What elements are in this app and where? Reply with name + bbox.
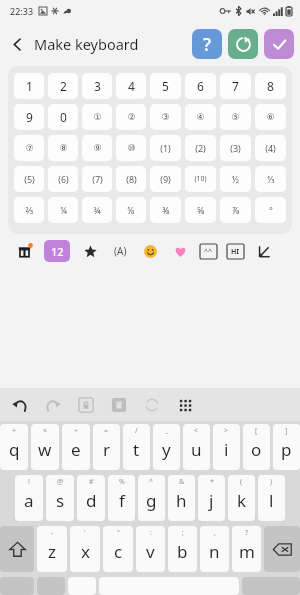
button[interactable]: Lock (76, 395, 96, 415)
button[interactable]: ⅝ (185, 197, 216, 223)
button[interactable]: / (123, 424, 150, 470)
button[interactable]: + (0, 424, 28, 470)
staticText: ⑦ (25, 143, 34, 153)
button[interactable]: 4 (116, 73, 146, 99)
staticText: " (117, 528, 120, 538)
button[interactable]: Hearts (170, 241, 190, 261)
button[interactable]: 6 (185, 73, 216, 99)
button[interactable]: ⅓ (255, 166, 286, 192)
staticText: Make keyboard (34, 34, 139, 54)
button[interactable]: Favorites (80, 241, 100, 261)
button[interactable]: , (200, 526, 229, 572)
button[interactable]: ; (168, 526, 197, 572)
staticText: ( (240, 477, 243, 487)
button[interactable]: Help (192, 29, 222, 59)
button[interactable]: Text (227, 244, 244, 259)
button[interactable]: ÷ (62, 424, 90, 470)
button[interactable]: ⑦ (14, 135, 44, 161)
button[interactable]: Done (264, 29, 294, 59)
button[interactable]: ! (15, 475, 43, 521)
button[interactable]: > (213, 424, 240, 470)
button[interactable]: & (168, 475, 195, 521)
button[interactable]: ⑥ (255, 104, 286, 130)
button[interactable]: ⑩ (116, 135, 146, 161)
button[interactable]: 12 (44, 240, 70, 262)
button[interactable]: ¼ (48, 197, 78, 223)
button[interactable]: ¾ (82, 197, 112, 223)
button[interactable]: (8) (116, 166, 146, 192)
button[interactable]: ' (70, 526, 100, 572)
button[interactable]: ( (228, 475, 255, 521)
button[interactable]: ] (273, 424, 300, 470)
button[interactable]: Sync (142, 395, 162, 415)
button[interactable]: ° (255, 197, 286, 223)
button[interactable]: - (37, 526, 67, 572)
button[interactable]: Import (14, 241, 34, 261)
button[interactable]: 2 (48, 73, 78, 99)
button[interactable]: (1) (150, 135, 181, 161)
button[interactable]: # (77, 475, 105, 521)
button[interactable]: Letters (110, 241, 130, 261)
button[interactable]: ⅞ (220, 197, 251, 223)
button[interactable]: ⅔ (14, 197, 44, 223)
button[interactable]: " (103, 526, 133, 572)
staticText: ⑥ (266, 112, 275, 122)
button[interactable]: (5) (14, 166, 44, 192)
button[interactable]: (10) (185, 166, 216, 192)
button[interactable]: Keypad (175, 395, 195, 415)
button[interactable]: < (183, 424, 210, 470)
button[interactable]: 8 (255, 73, 286, 99)
button[interactable]: ½ (220, 166, 251, 192)
button[interactable]: ? (232, 526, 261, 572)
button[interactable]: (7) (82, 166, 112, 192)
button[interactable]: (6) (48, 166, 78, 192)
button[interactable]: Shift (0, 526, 34, 572)
button[interactable]: (9) (150, 166, 181, 192)
button[interactable]: (2) (185, 135, 216, 161)
button[interactable]: Backspace (264, 526, 300, 572)
button[interactable]: @ (46, 475, 74, 521)
button[interactable]: Redo (43, 395, 63, 415)
button[interactable]: ⑧ (48, 135, 78, 161)
button[interactable]: Kaomoji (200, 244, 217, 259)
button[interactable]: 1 (14, 73, 44, 99)
button[interactable] (68, 577, 96, 595)
button[interactable]: ⅛ (116, 197, 146, 223)
button[interactable]: 5 (150, 73, 181, 99)
button[interactable]: % (108, 475, 135, 521)
staticText: [ (255, 426, 258, 436)
button[interactable]: 3 (82, 73, 112, 99)
button[interactable]: × (31, 424, 59, 470)
button[interactable]: ⑤ (220, 104, 251, 130)
button[interactable]: _ (153, 424, 180, 470)
button[interactable]: ④ (185, 104, 216, 130)
button[interactable]: [ (243, 424, 270, 470)
staticText: ' (84, 528, 86, 538)
button[interactable]: = (93, 424, 120, 470)
button[interactable]: 0 (48, 104, 78, 130)
button[interactable]: ① (82, 104, 112, 130)
button[interactable]: ③ (150, 104, 181, 130)
button[interactable]: Reset (228, 29, 258, 59)
button[interactable]: Delete (109, 395, 129, 415)
button[interactable]: ⅜ (150, 197, 181, 223)
button[interactable]: Undo (10, 395, 30, 415)
button[interactable]: 9 (14, 104, 44, 130)
button[interactable]: : (136, 526, 165, 572)
button[interactable]: (3) (220, 135, 251, 161)
staticText: ① (93, 112, 102, 122)
button[interactable]: Back (0, 27, 34, 61)
button[interactable]: ^ (138, 475, 165, 521)
button[interactable]: ⑨ (82, 135, 112, 161)
button[interactable]: Emoji (140, 241, 160, 261)
button[interactable]: Arrows (254, 241, 274, 261)
button[interactable]: 7 (220, 73, 251, 99)
button[interactable]: (4) (255, 135, 286, 161)
button[interactable]: ② (116, 104, 146, 130)
button[interactable]: ) (258, 475, 285, 521)
button[interactable]: * (198, 475, 225, 521)
